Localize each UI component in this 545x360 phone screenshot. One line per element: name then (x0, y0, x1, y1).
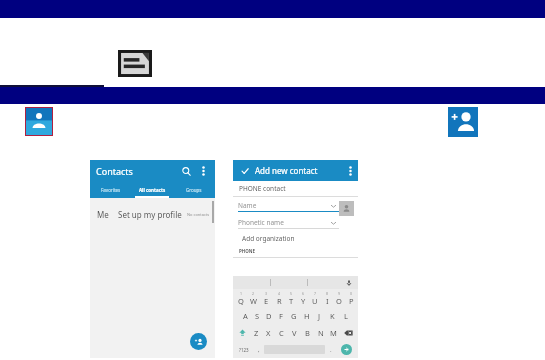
button[interactable]: F (275, 307, 287, 324)
button[interactable]: J (313, 307, 326, 324)
staticText: Groups (186, 187, 202, 193)
button[interactable]: ?123 (235, 341, 253, 358)
staticText: M (330, 328, 337, 338)
staticText: E (264, 296, 269, 306)
button[interactable]: Groups (173, 182, 215, 198)
button[interactable]: List icon (118, 50, 152, 77)
staticText: ?123 (239, 347, 249, 353)
button[interactable]: 3 (260, 289, 273, 307)
staticText: S (255, 311, 260, 321)
button[interactable]: N (314, 324, 327, 341)
staticText: Me (97, 209, 109, 220)
button[interactable]: Voice input (344, 278, 353, 287)
button[interactable]: Save (239, 165, 250, 176)
button[interactable]: 5 (285, 289, 297, 307)
button[interactable]: Favorites (90, 182, 131, 198)
staticText: U (312, 296, 318, 306)
button[interactable]: Add contact (190, 333, 207, 350)
staticText: Favorites (101, 187, 121, 193)
button[interactable]: Search (179, 164, 193, 178)
button[interactable]: 7 (309, 289, 321, 307)
staticText: Add new contact (255, 165, 318, 176)
button[interactable]: 9 (333, 289, 345, 307)
button[interactable]: C (275, 324, 288, 341)
button[interactable]: V (288, 324, 301, 341)
staticText: Contacts (96, 165, 133, 177)
button[interactable]: 1 (234, 289, 247, 307)
button[interactable]: , (253, 341, 264, 358)
staticText: C (279, 328, 284, 338)
staticText: D (266, 311, 272, 321)
button[interactable]: 2 (247, 289, 260, 307)
staticText: W (250, 296, 257, 306)
staticText: Y (301, 296, 306, 306)
staticText: 6 (302, 291, 305, 296)
button[interactable]: Next (341, 344, 352, 355)
button[interactable]: H (300, 307, 313, 324)
button[interactable]: . (325, 341, 336, 358)
staticText: , (258, 346, 260, 354)
button[interactable]: Backspace (340, 324, 357, 341)
staticText: B (305, 328, 310, 338)
staticText: 2 (252, 291, 255, 296)
staticText: Phonetic name (238, 218, 284, 227)
button[interactable]: D (263, 307, 275, 324)
staticText: L (344, 311, 348, 321)
staticText: G (291, 311, 297, 321)
staticText: K (330, 311, 335, 321)
button[interactable]: A (239, 307, 251, 324)
button[interactable]: B (301, 324, 314, 341)
button[interactable]: More options (197, 165, 209, 177)
staticText: R (277, 296, 282, 306)
button[interactable]: 0 (345, 289, 357, 307)
staticText: 3 (265, 291, 268, 296)
staticText: P (349, 296, 354, 306)
button[interactable]: X (262, 324, 275, 341)
button[interactable]: Contacts app (25, 107, 53, 136)
button[interactable]: 8 (321, 289, 333, 307)
button[interactable]: Shift (234, 324, 250, 341)
staticText: Add organization (242, 234, 295, 243)
button[interactable]: G (287, 307, 300, 324)
staticText: Z (254, 328, 259, 338)
staticText: All contacts (139, 187, 166, 193)
staticText: A (243, 311, 248, 321)
staticText: 1 (240, 291, 243, 296)
button[interactable]: Z (250, 324, 262, 341)
button[interactable]: Add photo (339, 201, 354, 216)
staticText: J (318, 311, 321, 321)
staticText: T (289, 296, 294, 306)
staticText: PHONE (239, 248, 255, 254)
staticText: . (330, 346, 332, 354)
staticText: 8 (326, 291, 329, 296)
staticText: Q (238, 296, 244, 306)
staticText: I (326, 296, 329, 306)
staticText: F (279, 311, 283, 321)
staticText: 5 (290, 291, 293, 296)
button[interactable]: K (326, 307, 339, 324)
staticText: N (318, 328, 324, 338)
staticText: V (292, 328, 297, 338)
staticText: 4 (278, 291, 281, 296)
staticText: Set up my profile (118, 209, 182, 220)
button[interactable]: Add new contact (448, 107, 478, 137)
button[interactable]: 6 (297, 289, 309, 307)
staticText: Name (238, 201, 257, 210)
staticText: 0 (350, 291, 353, 296)
button[interactable]: L (339, 307, 352, 324)
button[interactable]: M (327, 324, 340, 341)
button[interactable]: 4 (273, 289, 285, 307)
staticText: O (336, 296, 342, 306)
button[interactable]: All contacts (131, 182, 173, 198)
staticText: PHONE contact (239, 184, 286, 193)
staticText: 9 (338, 291, 341, 296)
button[interactable]: S (251, 307, 263, 324)
staticText: 7 (314, 291, 317, 296)
staticText: H (304, 311, 310, 321)
staticText: X (266, 328, 271, 338)
staticText: No contacts (187, 212, 210, 217)
